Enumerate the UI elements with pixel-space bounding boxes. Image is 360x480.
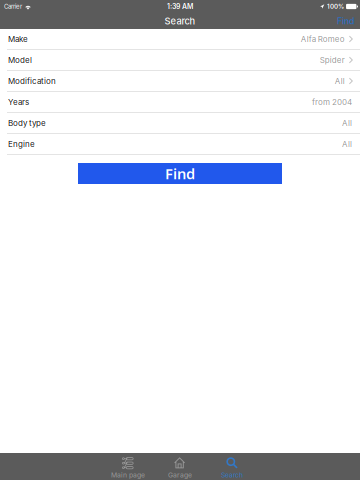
button[interactable]: Find [331,13,360,29]
staticText: Make [8,34,28,44]
staticText: Garage [168,471,192,479]
button[interactable]: Garage [154,453,206,480]
staticText: Main page [111,471,145,479]
staticText: Carrier [4,3,22,10]
button[interactable]: Make [0,29,360,50]
button[interactable]: Body type [0,113,360,134]
staticText: Spider [320,55,345,65]
staticText: 1:39 AM [167,2,193,11]
staticText: All [342,139,352,149]
button[interactable]: Years [0,92,360,113]
staticText: Years [8,97,29,107]
button[interactable]: Model [0,50,360,71]
staticText: Model [8,55,32,65]
staticText: from 2004 [312,97,352,107]
staticText: 100% [327,3,344,10]
staticText: All [335,76,345,86]
button[interactable]: Find [78,163,282,184]
button[interactable]: Modification [0,71,360,92]
staticText: Search [221,471,243,479]
button[interactable]: Search [206,453,258,480]
staticText: Find [165,164,195,183]
staticText: Search [164,15,195,27]
button[interactable]: Main page [102,453,154,480]
staticText: All [342,118,352,128]
staticText: Body type [8,118,46,128]
button[interactable]: Engine [0,134,360,155]
staticText: Alfa Romeo [301,34,345,44]
staticText: Engine [8,139,35,149]
staticText: Find [337,16,354,26]
staticText: Modification [8,76,56,86]
